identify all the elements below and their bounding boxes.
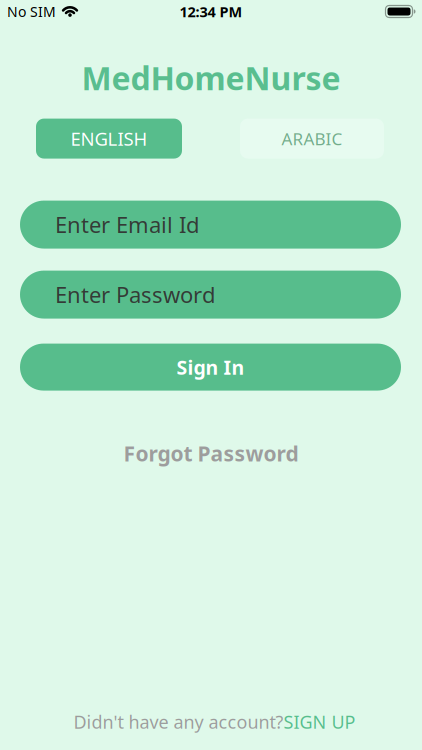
staticText: Forgot Password xyxy=(123,439,298,468)
staticText: SIGN UP xyxy=(283,709,355,734)
staticText: 12:34 PM xyxy=(179,2,242,21)
staticText: ARABIC xyxy=(281,127,342,150)
staticText: Didn't have any account? xyxy=(73,709,283,734)
staticText: Sign In xyxy=(176,354,244,380)
button[interactable]: ARABIC xyxy=(240,119,384,159)
staticText: MedHomeNurse xyxy=(81,56,340,100)
staticText: Enter Password xyxy=(55,280,216,310)
button[interactable]: SIGN UP xyxy=(283,709,355,734)
button[interactable]: Sign In xyxy=(20,344,401,391)
button[interactable]: Enter Password xyxy=(20,271,401,319)
staticText: No SIM xyxy=(7,2,56,21)
staticText: ENGLISH xyxy=(70,126,147,151)
button[interactable]: ENGLISH xyxy=(36,119,182,159)
button[interactable]: Forgot Password xyxy=(123,439,298,468)
staticText: Enter Email Id xyxy=(55,210,200,240)
button[interactable]: Enter Email Id xyxy=(20,201,401,249)
